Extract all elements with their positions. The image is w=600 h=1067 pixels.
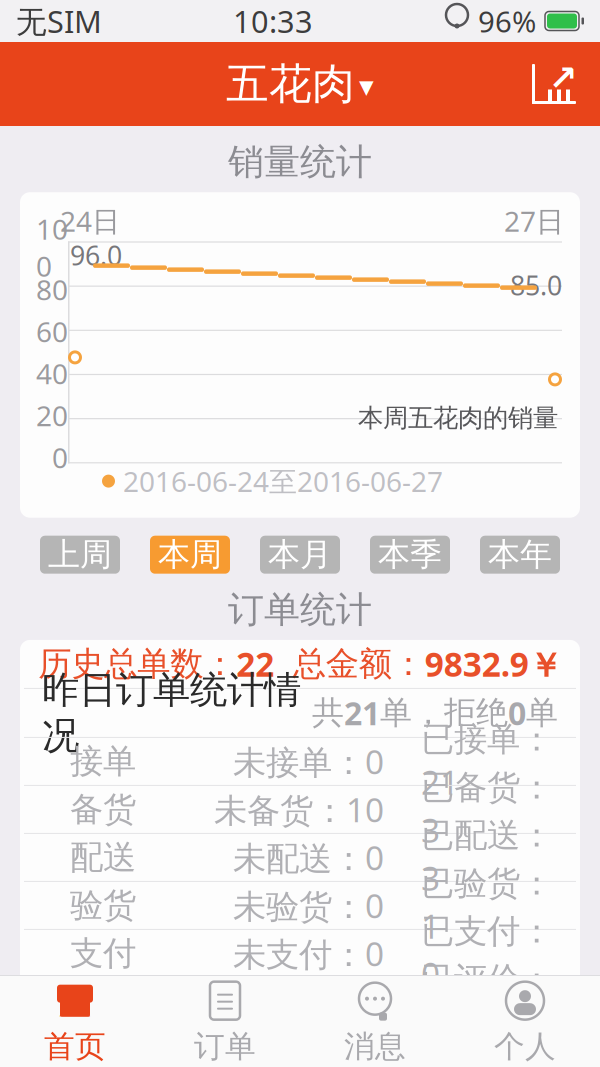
staticText: 2016-06-24至2016-06-27 bbox=[123, 462, 443, 500]
staticText: 单 bbox=[526, 693, 558, 733]
button[interactable]: 本季 bbox=[370, 536, 450, 574]
button[interactable]: 个人 bbox=[450, 976, 600, 1067]
button[interactable]: 本周 bbox=[150, 536, 230, 574]
staticText: 已配送：3 bbox=[421, 815, 553, 900]
staticText: 验货 bbox=[70, 885, 136, 926]
staticText: 已验货：1 bbox=[421, 863, 553, 948]
staticText: ▾ bbox=[359, 69, 374, 103]
staticText: 销量统计 bbox=[228, 140, 372, 184]
staticText: 已支付：0 bbox=[421, 911, 553, 996]
button[interactable]: 上周 bbox=[40, 536, 120, 574]
staticText: 10:33 bbox=[233, 1, 313, 41]
staticText: 60 bbox=[36, 313, 68, 350]
staticText: 0 bbox=[508, 692, 526, 734]
staticText: 85.0 bbox=[510, 267, 562, 303]
button[interactable]: 消息 bbox=[300, 976, 450, 1067]
staticText: 支付 bbox=[70, 933, 136, 974]
staticText: 96% bbox=[478, 1, 536, 40]
button[interactable]: 销量图表 bbox=[522, 54, 586, 114]
staticText: 已评价：0 bbox=[421, 959, 553, 1044]
staticText: 20 bbox=[36, 397, 68, 434]
button[interactable]: 本年 bbox=[480, 536, 560, 574]
staticText: 本年 bbox=[488, 535, 552, 574]
staticText: 未接单：0 bbox=[233, 739, 384, 784]
staticText: 本周 bbox=[158, 535, 222, 574]
staticText: 0 bbox=[52, 439, 68, 476]
staticText: 未评价：0 bbox=[233, 979, 384, 1024]
staticText: 未支付：0 bbox=[233, 931, 384, 976]
staticText: 历史总单数： bbox=[38, 643, 236, 684]
staticText: 本月 bbox=[268, 535, 332, 574]
staticText: 消息 bbox=[344, 1028, 406, 1065]
staticText: 80 bbox=[36, 271, 68, 308]
staticText: 单，拒绝 bbox=[380, 693, 508, 733]
button[interactable]: 本月 bbox=[260, 536, 340, 574]
staticText: 个人 bbox=[494, 1028, 556, 1065]
staticText: 24日 bbox=[60, 202, 120, 239]
staticText: 96.0 bbox=[70, 237, 122, 273]
button[interactable]: 五花肉 bbox=[216, 52, 384, 116]
staticText: 22 bbox=[236, 642, 274, 686]
staticText: 订单 bbox=[194, 1028, 256, 1065]
staticText: 27日 bbox=[504, 202, 564, 239]
staticText: 本周五花肉的销量 bbox=[358, 402, 558, 434]
staticText: 订单统计 bbox=[228, 588, 372, 632]
staticText: 未验货：0 bbox=[233, 883, 384, 928]
staticText: ↗ bbox=[548, 58, 577, 98]
staticText: 无SIM bbox=[16, 1, 102, 41]
staticText: 昨日订单统计情况 bbox=[42, 667, 301, 759]
staticText: 21 bbox=[344, 692, 380, 734]
staticText: 未配送：0 bbox=[233, 835, 384, 880]
staticText: 配送 bbox=[70, 837, 136, 878]
staticText: ▲ bbox=[59, 975, 90, 1020]
staticText: 本季 bbox=[378, 535, 442, 574]
staticText: 备货 bbox=[70, 789, 136, 830]
staticText: 40 bbox=[36, 355, 68, 392]
staticText: 五花肉 bbox=[226, 58, 355, 110]
staticText: 未备货：10 bbox=[214, 787, 384, 832]
staticText: 总金额： bbox=[293, 643, 425, 684]
staticText: 首页 bbox=[44, 1028, 106, 1065]
staticText: 已备货：3 bbox=[421, 767, 553, 852]
button[interactable]: 订单 bbox=[150, 976, 300, 1067]
staticText: 上周 bbox=[48, 535, 112, 574]
staticText: 100 bbox=[36, 210, 68, 285]
staticText: 接单 bbox=[70, 741, 136, 782]
staticText: 共 bbox=[312, 693, 344, 733]
staticText: 9832.9￥ bbox=[425, 642, 562, 686]
staticText: 评价 bbox=[70, 981, 136, 1022]
staticText: 已接单：21 bbox=[421, 719, 553, 804]
button[interactable]: ▲ bbox=[0, 976, 150, 1067]
